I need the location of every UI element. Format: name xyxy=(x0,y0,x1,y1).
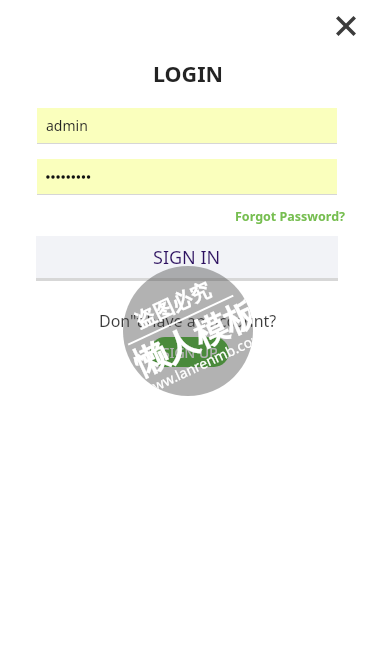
staticText: Don"t have an account? xyxy=(99,310,277,332)
button[interactable]: Forgot Password? xyxy=(231,205,350,228)
staticText: SIGN IN xyxy=(153,245,221,270)
button[interactable] xyxy=(37,159,337,194)
staticText: SIGN UP xyxy=(162,343,218,362)
staticText: 盗图必究 xyxy=(131,277,214,334)
button[interactable]: admin xyxy=(37,108,337,143)
button[interactable]: Close xyxy=(326,6,366,46)
staticText: Forgot Password? xyxy=(235,208,346,225)
staticText: 懒人模板 xyxy=(127,292,253,385)
staticText: www.lanrenmb.com xyxy=(139,327,253,396)
button[interactable]: SIGN IN xyxy=(36,236,338,278)
staticText: admin xyxy=(46,116,88,135)
button[interactable]: SIGN UP xyxy=(150,337,229,367)
staticText: LOGIN xyxy=(153,59,224,88)
